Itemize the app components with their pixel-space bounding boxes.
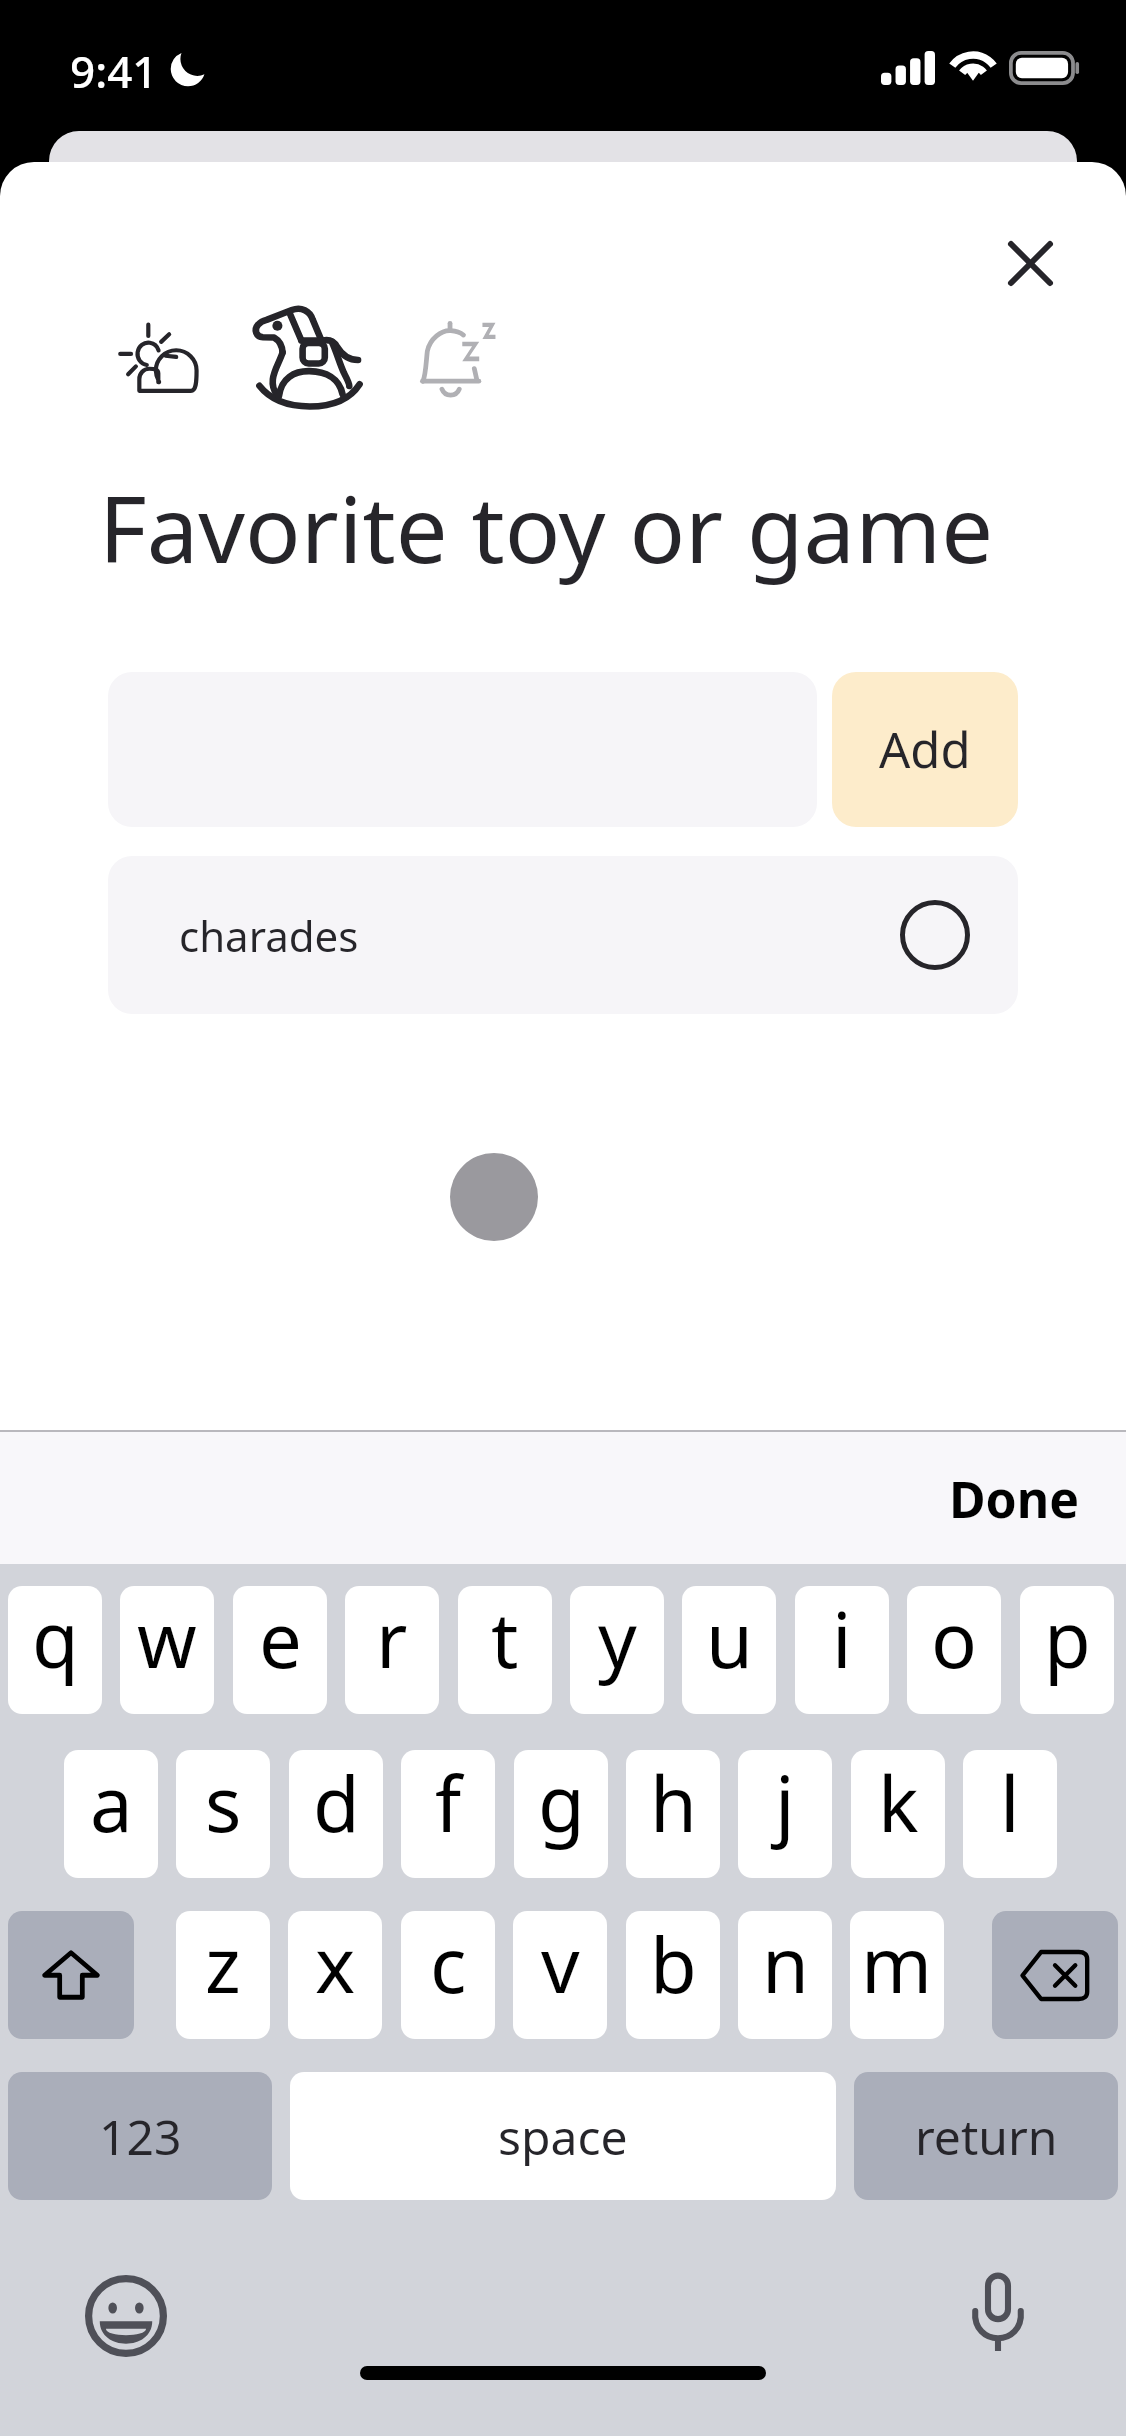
button[interactable]: y — [570, 1586, 664, 1714]
staticText: p — [1044, 1587, 1091, 1691]
staticText: w — [137, 1587, 197, 1691]
button[interactable]: j — [738, 1750, 832, 1878]
button[interactable]: v — [513, 1911, 607, 2039]
staticText: t — [491, 1587, 519, 1691]
button[interactable]: space — [290, 2072, 836, 2200]
button[interactable]: x — [288, 1911, 382, 2039]
button[interactable]: g — [514, 1750, 608, 1878]
button[interactable]: h — [626, 1750, 720, 1878]
button[interactable]: 123 — [8, 2072, 272, 2200]
staticText: j — [775, 1751, 795, 1855]
button[interactable]: t — [458, 1586, 552, 1714]
staticText: z — [205, 1912, 241, 2016]
staticText: Add — [879, 716, 971, 783]
staticText: space — [498, 2104, 628, 2169]
button[interactable]: s — [176, 1750, 270, 1878]
button[interactable]: Shift — [8, 1911, 134, 2039]
button[interactable]: a — [64, 1750, 158, 1878]
staticText: v — [541, 1912, 580, 2016]
button[interactable]: q — [8, 1586, 102, 1714]
staticText: m — [861, 1912, 933, 2016]
button[interactable]: Daytime — [95, 298, 217, 414]
button[interactable]: Emoji keyboard — [76, 2266, 176, 2366]
staticText: 9:41 — [70, 41, 158, 101]
button[interactable]: Backspace — [992, 1911, 1118, 2039]
button[interactable]: c — [401, 1911, 495, 2039]
staticText: i — [832, 1587, 852, 1691]
staticText: return — [915, 2104, 1058, 2169]
button[interactable]: l — [963, 1750, 1057, 1878]
staticText: Favorite toy or game — [99, 465, 994, 590]
staticText: 123 — [99, 2104, 182, 2169]
button[interactable]: p — [1020, 1586, 1114, 1714]
button[interactable]: z — [176, 1911, 270, 2039]
staticText: a — [90, 1751, 133, 1855]
staticText: o — [931, 1587, 977, 1691]
button[interactable]: Playtime — [245, 292, 369, 409]
button[interactable]: r — [345, 1586, 439, 1714]
button[interactable]: b — [626, 1911, 720, 2039]
button[interactable]: k — [851, 1750, 945, 1878]
button[interactable]: o — [907, 1586, 1001, 1714]
staticText: c — [430, 1912, 467, 2016]
staticText: l — [1000, 1751, 1020, 1855]
staticText: q — [32, 1587, 79, 1691]
staticText: x — [315, 1912, 356, 2016]
staticText: h — [650, 1751, 697, 1855]
staticText: u — [706, 1587, 753, 1691]
staticText: e — [259, 1587, 302, 1691]
staticText: r — [376, 1587, 408, 1691]
button[interactable]: n — [738, 1911, 832, 2039]
staticText: f — [435, 1751, 462, 1855]
button[interactable]: charades — [108, 856, 1018, 1014]
button[interactable]: Close — [978, 211, 1082, 315]
button[interactable]: w — [120, 1586, 214, 1714]
button[interactable]: Done — [913, 1447, 1126, 1551]
staticText: y — [598, 1587, 637, 1691]
button[interactable]: d — [289, 1750, 383, 1878]
staticText: Done — [949, 1465, 1080, 1533]
button[interactable]: return — [854, 2072, 1118, 2200]
staticText: g — [538, 1751, 585, 1855]
button[interactable]: i — [795, 1586, 889, 1714]
staticText: k — [878, 1751, 919, 1855]
button[interactable]: f — [401, 1750, 495, 1878]
staticText: s — [205, 1751, 242, 1855]
staticText: charades — [179, 907, 359, 964]
button[interactable]: Dictation — [949, 2261, 1047, 2361]
button[interactable]: Add — [832, 672, 1018, 827]
button[interactable]: e — [233, 1586, 327, 1714]
staticText: d — [313, 1751, 360, 1855]
button[interactable]: u — [682, 1586, 776, 1714]
button[interactable]: Sleep — [400, 298, 514, 414]
staticText: n — [762, 1912, 809, 2016]
button[interactable]: m — [850, 1911, 944, 2039]
staticText: b — [650, 1912, 697, 2016]
